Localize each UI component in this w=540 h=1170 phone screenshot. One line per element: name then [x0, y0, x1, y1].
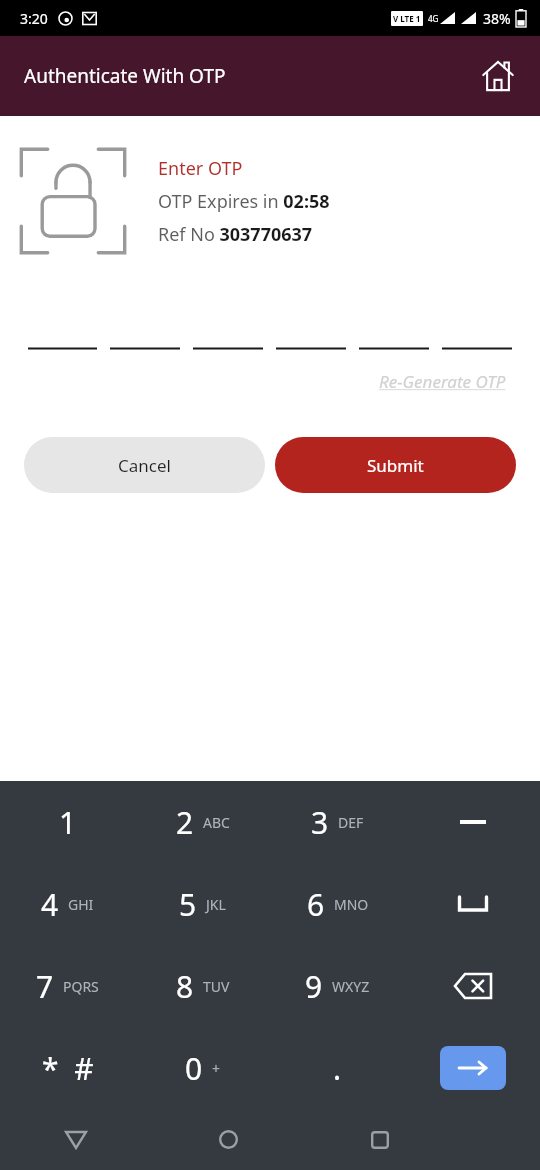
staticText: Re-Generate OTP — [379, 370, 506, 393]
staticText: 2 — [176, 802, 194, 843]
staticText: 0 — [185, 1048, 203, 1089]
staticText: ABC — [203, 813, 230, 832]
staticText: 3 — [311, 802, 329, 843]
staticText: GHI — [68, 895, 94, 914]
button[interactable]: . — [270, 1027, 405, 1109]
button[interactable]: Minus — [405, 781, 540, 863]
staticText: PQRS — [63, 977, 99, 996]
staticText: WXYZ — [332, 977, 370, 996]
button[interactable]: 0 — [135, 1027, 270, 1109]
staticText: 1 — [59, 802, 77, 843]
staticText: 9 — [305, 966, 323, 1007]
button[interactable]: 1 — [0, 781, 135, 863]
button[interactable] — [28, 328, 97, 350]
staticText: OTP Expires in 02:58 — [158, 189, 330, 214]
staticText: Submit — [367, 454, 424, 477]
staticText: + — [212, 1059, 221, 1078]
button[interactable]: Space — [405, 863, 540, 945]
staticText: 4 — [41, 884, 59, 925]
button[interactable] — [276, 328, 346, 350]
staticText: . — [333, 1048, 342, 1089]
button[interactable]: 8 — [135, 945, 270, 1027]
button[interactable]: Home — [152, 1109, 304, 1170]
button[interactable]: 3 — [270, 781, 405, 863]
button[interactable] — [110, 328, 180, 350]
staticText: JKL — [206, 895, 226, 914]
button[interactable]: 7 — [0, 945, 135, 1027]
staticText: 5 — [179, 884, 197, 925]
staticText: 3:20 — [20, 9, 48, 28]
button[interactable]: Cancel — [24, 437, 265, 493]
staticText: TUV — [203, 977, 230, 996]
button[interactable]: Recent apps — [304, 1109, 456, 1170]
button[interactable]: Backspace — [405, 945, 540, 1027]
staticText: Ref No 303770637 — [158, 222, 313, 247]
button[interactable]: Enter — [405, 1027, 540, 1109]
button[interactable]: Re-Generate OTP — [375, 366, 510, 397]
staticText: DEF — [338, 813, 364, 832]
staticText: 4G — [428, 13, 439, 24]
button[interactable]: 4 — [0, 863, 135, 945]
button[interactable] — [359, 328, 429, 350]
button[interactable] — [442, 328, 512, 350]
button[interactable]: Submit — [275, 437, 516, 493]
button[interactable]: 9 — [270, 945, 405, 1027]
staticText: Cancel — [118, 454, 171, 477]
button[interactable]: Back — [0, 1109, 152, 1170]
button[interactable]: Home — [474, 52, 522, 100]
button[interactable]: 2 — [135, 781, 270, 863]
staticText: 6 — [307, 884, 325, 925]
button[interactable]: 5 — [135, 863, 270, 945]
button[interactable]: 6 — [270, 863, 405, 945]
staticText: * # — [42, 1048, 94, 1089]
staticText: 38% — [483, 9, 511, 28]
staticText: 7 — [36, 966, 54, 1007]
staticText: Enter OTP — [158, 156, 243, 181]
staticText: Authenticate With OTP — [24, 63, 226, 89]
staticText: MNO — [334, 895, 369, 914]
staticText: 8 — [176, 966, 194, 1007]
staticText: V LTE 1 — [393, 13, 421, 24]
button[interactable] — [193, 328, 263, 350]
button[interactable]: * # — [0, 1027, 135, 1109]
